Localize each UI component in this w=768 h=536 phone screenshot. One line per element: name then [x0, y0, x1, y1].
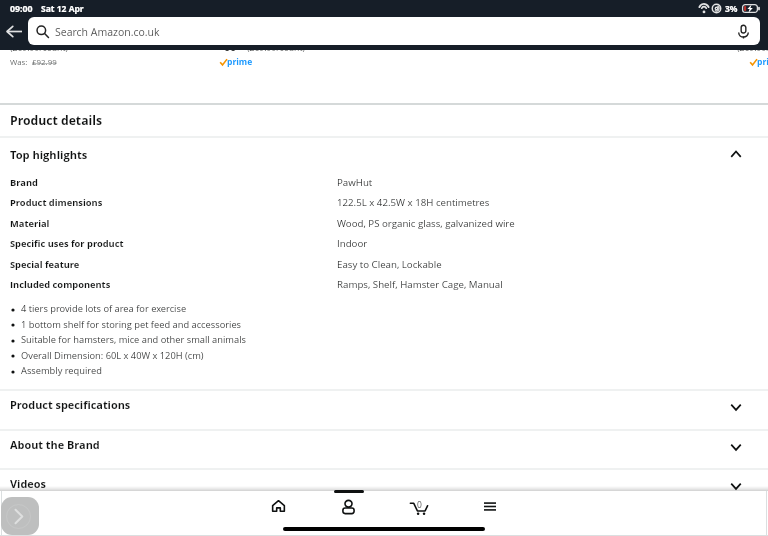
button[interactable]: Cart, 0 items	[393, 490, 445, 522]
staticText: 66	[224, 40, 236, 54]
button[interactable]: Videos	[0, 469, 768, 508]
button[interactable]: Expand Videos	[722, 472, 750, 500]
staticText: Assembly required	[21, 364, 102, 377]
staticText: About the Brand	[10, 437, 100, 452]
staticText: Top highlights	[10, 147, 88, 162]
staticText: Overall Dimension: 60L x 40W x 120H (cm)	[21, 349, 204, 362]
staticText: Product specifications	[10, 397, 131, 412]
staticText: Special feature	[10, 258, 80, 271]
button[interactable]: About the Brand	[0, 430, 768, 469]
staticText: Search Amazon.co.uk	[55, 25, 737, 39]
button[interactable]: Menu	[464, 490, 516, 522]
staticText: £92.99	[32, 57, 57, 68]
staticText: Included components	[10, 278, 111, 291]
staticText: Sat 12 Apr	[41, 3, 84, 15]
staticText: Was:	[10, 57, 28, 68]
staticText: (£69.99/count)	[247, 42, 305, 54]
button[interactable]: Expand About the Brand	[722, 433, 750, 461]
staticText: 3%	[725, 3, 738, 15]
staticText: Videos	[10, 476, 46, 491]
staticText: Brand	[10, 176, 38, 189]
button[interactable]: Search Amazon.co.uk	[28, 17, 760, 45]
staticText: (£69.99/count)	[10, 42, 68, 54]
staticText: prime	[757, 56, 768, 68]
button[interactable]: Back	[0, 17, 28, 45]
staticText: Wood, PS organic glass, galvanized wire	[337, 217, 515, 230]
staticText: prime	[227, 56, 253, 68]
staticText: 4 tiers provide lots of area for exercis…	[21, 302, 187, 315]
staticText: Suitable for hamsters, mice and other sm…	[21, 333, 246, 346]
staticText: 09:00	[10, 3, 33, 15]
staticText: 0	[417, 499, 422, 511]
staticText: 1 bottom shelf for storing pet feed and …	[21, 318, 242, 331]
staticText: Easy to Clean, Lockable	[337, 258, 442, 271]
staticText: Indoor	[337, 237, 368, 250]
staticText: Product details	[10, 112, 102, 129]
button[interactable]: Product specifications	[0, 390, 768, 429]
staticText: Specific uses for product	[10, 237, 124, 250]
staticText: PawHut	[337, 176, 373, 189]
button[interactable]: Collapse Top highlights	[722, 141, 750, 169]
staticText: Product dimensions	[10, 196, 103, 209]
button[interactable]: Your account	[322, 490, 374, 522]
staticText: (£69.99/count)	[737, 42, 768, 54]
button[interactable]: Home	[252, 490, 304, 522]
button[interactable]: Expand Product specifications	[722, 393, 750, 421]
staticText: Ramps, Shelf, Hamster Cage, Manual	[337, 278, 503, 291]
staticText: 122.5L x 42.5W x 18H centimetres	[337, 196, 490, 209]
staticText: Material	[10, 217, 50, 230]
button[interactable]: Go forward	[1, 497, 39, 535]
